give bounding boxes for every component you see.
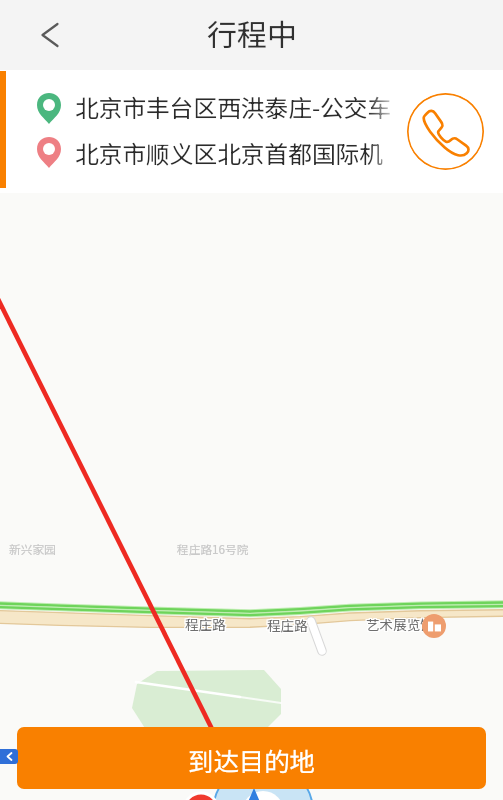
staticText: 程庄路 [186, 614, 227, 634]
staticText: 艺术展览馆 [366, 615, 434, 635]
staticText: 艺术展览馆 [365, 615, 433, 635]
staticText: 艺术展览馆 [366, 613, 434, 633]
staticText: 新兴家园 [9, 540, 56, 557]
staticText: 艺术展览馆 [367, 613, 435, 633]
staticText: 程庄路 [268, 615, 309, 635]
staticText: 艺术展览馆 [365, 614, 433, 634]
staticText: 程庄路 [186, 615, 227, 635]
staticText: 北京市丰台区西洪泰庄-公交车站 [75, 90, 401, 122]
staticText: 程庄路 [185, 615, 226, 635]
staticText: 程庄路 [267, 616, 308, 636]
button[interactable]: Call driver [407, 93, 484, 170]
staticText: 程庄路 [185, 614, 226, 634]
button[interactable]: System back [0, 749, 18, 764]
staticText: 艺术展览馆 [365, 613, 433, 633]
staticText: 程庄路 [184, 614, 225, 634]
staticText: 程庄路 [186, 613, 227, 633]
staticText: 艺术展览馆 [366, 614, 434, 634]
staticText: 艺术展览馆 [367, 615, 435, 635]
staticText: 程庄路 [266, 616, 307, 636]
staticText: 程庄路 [184, 613, 225, 633]
staticText: 程庄路 [184, 615, 225, 635]
staticText: 程庄路 [266, 614, 307, 634]
staticText: 程庄路 [268, 616, 309, 636]
staticText: 程庄路 [185, 613, 226, 633]
staticText: 程庄路16号院 [177, 540, 249, 557]
staticText: 程庄路 [267, 615, 308, 635]
staticText: 程庄路 [267, 614, 308, 634]
button[interactable]: Back [24, 9, 76, 61]
button[interactable]: 到达目的地 [17, 727, 486, 789]
staticText: 到达目的地 [188, 742, 315, 779]
staticText: 艺术展览馆 [367, 614, 435, 634]
staticText: 行程中 [207, 11, 297, 54]
staticText: 北京市顺义区北京首都国际机场 [75, 136, 401, 168]
staticText: 程庄路 [268, 614, 309, 634]
staticText: 程庄路 [266, 615, 307, 635]
